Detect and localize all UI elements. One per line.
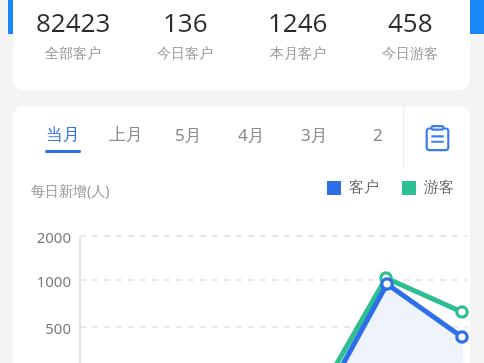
button[interactable]: 2 <box>346 106 409 170</box>
staticText: 1246 <box>268 4 328 39</box>
staticText: 136 <box>163 4 208 39</box>
staticText: 当月 <box>46 124 80 145</box>
staticText: 3月 <box>301 123 328 146</box>
button[interactable]: 游客 <box>402 178 454 197</box>
staticText: 每日新增(人) <box>31 181 110 200</box>
button[interactable]: 136 <box>133 4 237 63</box>
button[interactable]: 选择日期 <box>404 106 470 170</box>
staticText: 4月 <box>238 123 265 146</box>
button[interactable]: 5月 <box>157 106 220 170</box>
button[interactable]: 82423 <box>21 4 125 63</box>
staticText: 全部客户 <box>45 45 101 63</box>
staticText: 今日客户 <box>157 45 213 63</box>
button[interactable]: 当月 <box>31 106 94 170</box>
button[interactable]: 458 <box>358 4 462 63</box>
staticText: 2 <box>373 123 383 146</box>
staticText: 5月 <box>175 123 202 146</box>
staticText: 458 <box>388 4 433 39</box>
staticText: 游客 <box>424 178 454 197</box>
button[interactable]: 4月 <box>220 106 283 170</box>
staticText: 2000 <box>23 227 71 247</box>
staticText: 本月客户 <box>270 45 326 63</box>
staticText: 500 <box>23 318 71 338</box>
staticText: 82423 <box>36 4 111 39</box>
button[interactable]: 1246 <box>246 4 350 63</box>
button[interactable]: 客户 <box>327 178 379 197</box>
button[interactable]: 3月 <box>283 106 346 170</box>
staticText: 1000 <box>23 271 71 291</box>
button[interactable]: 上月 <box>94 106 157 170</box>
staticText: 今日游客 <box>382 45 438 63</box>
staticText: 客户 <box>349 178 379 197</box>
staticText: 上月 <box>109 124 143 145</box>
